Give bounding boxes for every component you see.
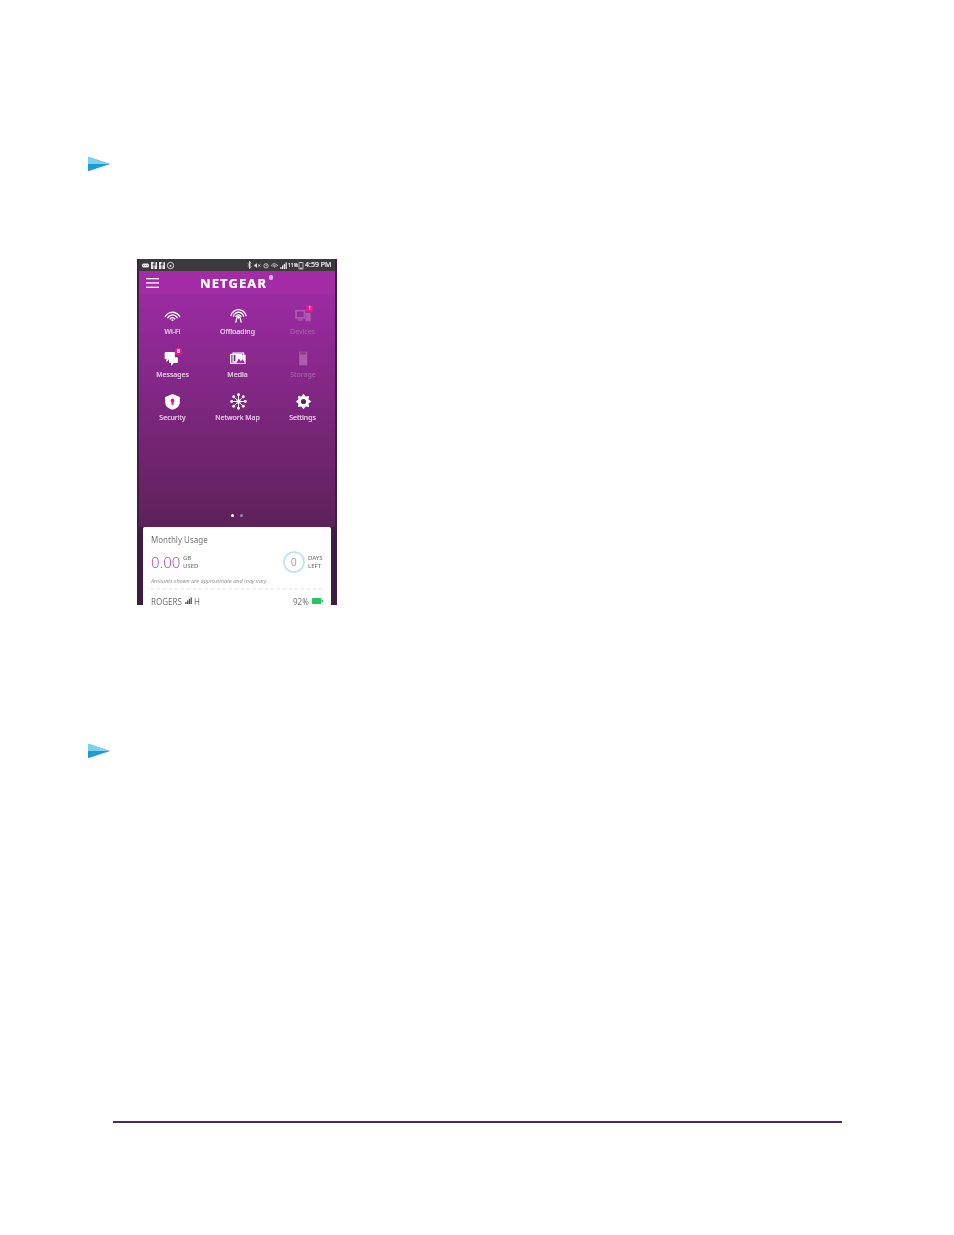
staticText: Storage (290, 370, 316, 380)
staticText: GB (183, 554, 192, 562)
staticText: Media (227, 370, 248, 380)
staticText: 11% (288, 262, 298, 269)
staticText: H (194, 596, 200, 605)
staticText: Wi-Fi (164, 327, 181, 337)
staticText: DAYS (308, 554, 323, 562)
button[interactable]: Offloading (205, 302, 270, 339)
staticText: Network Map (215, 413, 260, 423)
staticText: 6 (177, 348, 180, 355)
staticText: LEFT (308, 562, 322, 570)
staticText: Offloading (220, 327, 255, 337)
staticText: 0.00 (151, 552, 181, 572)
staticText: 92% (293, 596, 309, 605)
staticText: ® (269, 275, 274, 282)
button[interactable]: Network Map (205, 388, 270, 425)
staticText: 0 (291, 555, 297, 569)
staticText: Amounts shown are approximate and may va… (151, 577, 268, 584)
button[interactable]: Storage (270, 345, 335, 382)
staticText: NETGEAR (200, 274, 268, 292)
staticText: USED (183, 562, 199, 570)
button[interactable]: Menu (144, 275, 160, 291)
staticText: ! (309, 305, 311, 312)
staticText: 4:59 PM (305, 260, 332, 270)
staticText: Settings (289, 413, 316, 423)
staticText: Messages (156, 370, 189, 380)
staticText: Devices (290, 327, 315, 337)
button[interactable]: Monthly Usage (143, 527, 331, 605)
button[interactable]: Settings (270, 388, 335, 425)
staticText: ROGERS (151, 596, 182, 605)
button[interactable]: 6 (139, 345, 205, 382)
button[interactable]: Wi-Fi (139, 302, 205, 339)
staticText: Security (159, 413, 186, 423)
button[interactable]: Security (139, 388, 205, 425)
staticText: Monthly Usage (151, 534, 208, 545)
button[interactable]: Media (205, 345, 270, 382)
button[interactable]: ! (270, 302, 335, 339)
